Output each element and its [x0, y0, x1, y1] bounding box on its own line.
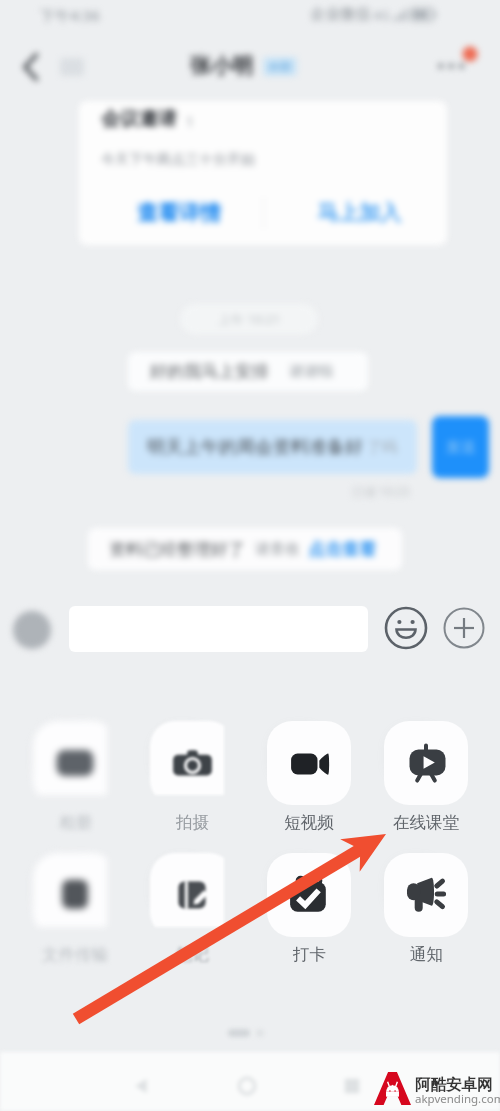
- button[interactable]: 发送: [432, 416, 489, 478]
- button[interactable]: 相册: [33, 721, 117, 833]
- staticText: 拍摄: [176, 812, 209, 833]
- button[interactable]: 会议邀请: [79, 101, 447, 245]
- button[interactable]: Voice: [12, 610, 52, 650]
- staticText: 外部: [268, 59, 292, 74]
- button[interactable]: 马上加入: [310, 200, 408, 226]
- staticText: 阿酷安卓网: [415, 1075, 493, 1095]
- button[interactable]: 查看详情: [130, 200, 228, 226]
- staticText: 张小明: [190, 53, 253, 79]
- staticText: 上午 10:21: [218, 310, 281, 328]
- staticText: 今天下午两点三十分开始: [101, 151, 255, 169]
- staticText: 会议邀请: [101, 107, 177, 131]
- button[interactable]: 短视频: [267, 721, 351, 833]
- staticText: 明天上午的周会资料准备好: [147, 436, 363, 459]
- staticText: 请查收: [255, 540, 300, 559]
- staticText: akpvending.com: [415, 1091, 500, 1107]
- staticText: 发送: [446, 438, 476, 457]
- button[interactable]: 打卡: [267, 853, 351, 965]
- staticText: 谢谢啦: [289, 362, 334, 381]
- staticText: 马上加入: [317, 200, 401, 226]
- staticText: 通知: [410, 944, 443, 965]
- button[interactable]: Emoji: [383, 605, 429, 651]
- staticText: 4G: [373, 6, 390, 24]
- staticText: 好的我马上安排: [150, 361, 269, 382]
- button[interactable]: Back: [129, 1073, 155, 1099]
- staticText: 相册: [59, 812, 92, 833]
- staticText: 点击查看: [308, 539, 376, 560]
- button[interactable]: Home: [234, 1073, 260, 1099]
- button[interactable]: More functions: [441, 605, 487, 651]
- button[interactable]: 通知: [384, 853, 468, 965]
- staticText: 在线课堂: [393, 812, 459, 833]
- staticText: 1: [186, 112, 195, 131]
- staticText: 企业微信: [310, 5, 370, 24]
- staticText: 短视频: [284, 812, 334, 833]
- button[interactable]: Recents: [339, 1073, 365, 1099]
- staticText: 文件传输: [42, 944, 108, 965]
- staticText: 资料已经整理好了: [109, 539, 245, 560]
- staticText: 下午4:36: [40, 5, 100, 25]
- staticText: 打卡: [293, 944, 326, 965]
- button[interactable]: 拍摄: [150, 721, 234, 833]
- staticText: 查看详情: [137, 200, 221, 226]
- button[interactable]: 笔记: [150, 853, 234, 965]
- button[interactable]: 文件传输: [33, 853, 117, 965]
- button[interactable]: 在线课堂: [384, 721, 468, 833]
- staticText: 了吗: [367, 438, 397, 457]
- staticText: 笔记: [176, 944, 209, 965]
